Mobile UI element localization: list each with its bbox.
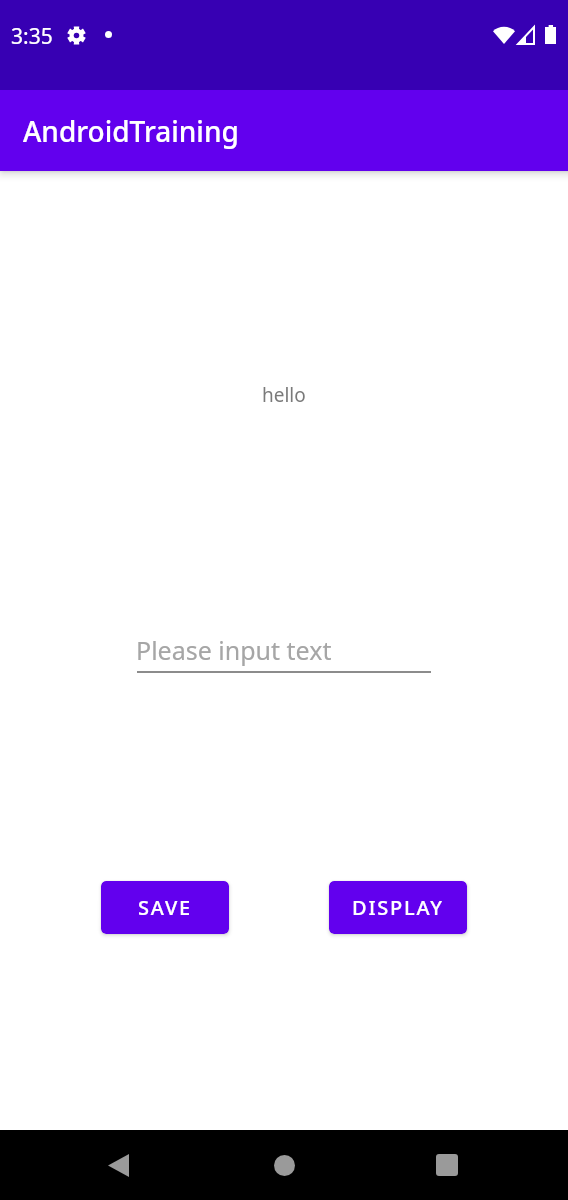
staticText: DISPLAY xyxy=(352,894,444,921)
button[interactable]: DISPLAY xyxy=(329,881,467,934)
other: Wi-Fi xyxy=(493,26,515,44)
button[interactable]: Home xyxy=(260,1141,308,1189)
staticText: Please input text xyxy=(136,633,332,667)
other: Battery xyxy=(545,25,556,44)
other: Mobile signal xyxy=(517,26,535,45)
staticText: SAVE xyxy=(138,894,192,921)
button[interactable]: Please input text xyxy=(137,627,431,675)
staticText: AndroidTraining xyxy=(23,112,239,150)
button[interactable]: Recent apps xyxy=(423,1141,471,1189)
button[interactable]: Back xyxy=(94,1141,142,1189)
button[interactable]: SAVE xyxy=(101,881,229,934)
staticText: 3:35 xyxy=(11,22,53,51)
other: Settings xyxy=(67,26,86,45)
staticText: hello xyxy=(262,382,306,408)
